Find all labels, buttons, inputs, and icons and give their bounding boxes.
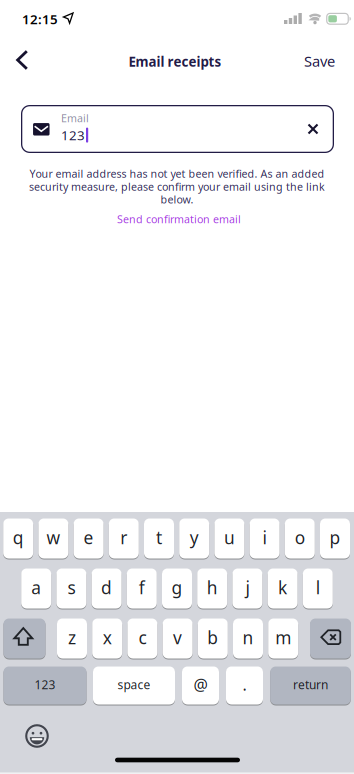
staticText: 12:15: [22, 10, 58, 28]
button[interactable]: @: [182, 666, 219, 705]
button[interactable]: p: [320, 518, 350, 559]
staticText: w: [46, 526, 60, 549]
button[interactable]: 123: [3, 666, 86, 705]
staticText: Save: [304, 51, 335, 71]
staticText: space: [117, 676, 150, 692]
staticText: Send confirmation email: [117, 212, 241, 226]
button[interactable]: z: [57, 618, 87, 659]
staticText: b: [207, 626, 218, 649]
staticText: j: [245, 576, 249, 599]
staticText: @: [193, 674, 207, 695]
button[interactable]: q: [3, 518, 33, 559]
staticText: Email: [61, 111, 89, 125]
button[interactable]: k: [268, 568, 298, 609]
staticText: d: [101, 576, 112, 599]
staticText: 123: [34, 676, 55, 692]
button[interactable]: o: [285, 518, 315, 559]
staticText: h: [207, 576, 218, 599]
staticText: y: [190, 526, 199, 549]
button[interactable]: h: [197, 568, 227, 609]
staticText: c: [138, 626, 146, 649]
button[interactable]: l: [303, 568, 333, 609]
button[interactable]: e: [74, 518, 104, 559]
button[interactable]: r: [109, 518, 139, 559]
button[interactable]: Shift: [3, 618, 45, 659]
button[interactable]: w: [38, 518, 68, 559]
button[interactable]: Clear: [293, 107, 333, 151]
button[interactable]: s: [56, 568, 86, 609]
staticText: t: [156, 526, 162, 549]
staticText: e: [84, 526, 94, 549]
button[interactable]: Emoji: [15, 714, 59, 758]
button[interactable]: return: [270, 666, 351, 705]
button[interactable]: x: [92, 618, 122, 659]
button[interactable]: b: [198, 618, 228, 659]
staticText: m: [275, 626, 291, 649]
staticText: o: [295, 526, 305, 549]
staticText: z: [68, 626, 76, 649]
staticText: s: [67, 576, 75, 599]
staticText: n: [242, 626, 253, 649]
button[interactable]: i: [250, 518, 280, 559]
staticText: below.: [160, 192, 193, 207]
staticText: a: [31, 576, 41, 599]
button[interactable]: y: [179, 518, 209, 559]
button[interactable]: Save: [304, 51, 335, 71]
button[interactable]: Send confirmation email: [117, 212, 241, 226]
staticText: k: [278, 576, 287, 599]
button[interactable]: m: [268, 618, 298, 659]
staticText: 123: [61, 126, 85, 144]
button[interactable]: a: [21, 568, 51, 609]
button[interactable]: Email: [21, 105, 334, 153]
staticText: Your email address has not yet been veri…: [29, 166, 324, 181]
staticText: Email receipts: [128, 53, 221, 70]
button[interactable]: f: [127, 568, 157, 609]
staticText: security measure, please confirm your em…: [29, 179, 325, 194]
staticText: p: [329, 526, 340, 549]
button[interactable]: n: [233, 618, 263, 659]
button[interactable]: Delete: [310, 618, 351, 659]
staticText: x: [103, 626, 112, 649]
button[interactable]: u: [214, 518, 244, 559]
button[interactable]: j: [232, 568, 262, 609]
button[interactable]: t: [144, 518, 174, 559]
button[interactable]: d: [92, 568, 122, 609]
staticText: l: [316, 576, 320, 599]
staticText: .: [242, 674, 246, 695]
button[interactable]: .: [226, 666, 263, 705]
staticText: q: [13, 526, 24, 549]
staticText: u: [224, 526, 235, 549]
staticText: f: [139, 576, 145, 599]
button[interactable]: c: [127, 618, 157, 659]
button[interactable]: v: [163, 618, 193, 659]
button[interactable]: Back: [0, 38, 44, 82]
button[interactable]: space: [93, 666, 175, 705]
staticText: g: [171, 576, 182, 599]
button[interactable]: g: [162, 568, 192, 609]
staticText: return: [293, 676, 328, 692]
staticText: r: [120, 526, 127, 549]
staticText: v: [173, 626, 182, 649]
staticText: i: [263, 526, 267, 549]
